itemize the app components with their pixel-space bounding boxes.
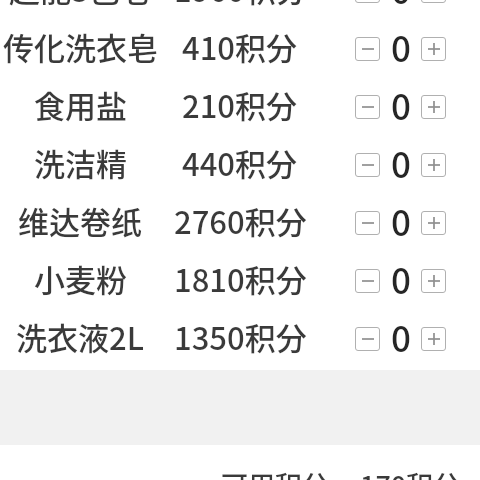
staticText: 洗洁精 bbox=[34, 140, 127, 185]
staticText: 440积分 bbox=[182, 140, 298, 185]
staticText: 0 bbox=[391, 0, 411, 14]
button[interactable]: Decrease quantity bbox=[355, 327, 380, 351]
button[interactable]: 维达卷纸 bbox=[0, 191, 480, 249]
button[interactable]: Decrease quantity bbox=[355, 37, 380, 61]
staticText: 410积分 bbox=[182, 24, 298, 69]
staticText: 0 bbox=[391, 311, 411, 362]
button[interactable]: 洗衣液2L bbox=[0, 307, 480, 365]
button[interactable]: Increase quantity bbox=[421, 269, 446, 293]
button[interactable]: 传化洗衣皂 bbox=[0, 17, 480, 75]
staticText: 210积分 bbox=[182, 82, 298, 127]
button[interactable]: Decrease quantity bbox=[355, 95, 380, 119]
staticText: 食用盐 bbox=[34, 82, 127, 127]
button[interactable]: Increase quantity bbox=[421, 0, 446, 3]
staticText: 0 bbox=[391, 253, 411, 304]
staticText: 0 bbox=[391, 79, 411, 130]
button[interactable]: Decrease quantity bbox=[355, 0, 380, 3]
button[interactable]: 食用盐 bbox=[0, 75, 480, 133]
staticText: 传化洗衣皂 bbox=[3, 24, 158, 69]
staticText: 维达卷纸 bbox=[18, 198, 142, 243]
staticText: 1960积分 bbox=[174, 0, 307, 11]
button[interactable]: 小麦粉 bbox=[0, 249, 480, 307]
button[interactable]: Increase quantity bbox=[421, 37, 446, 61]
button[interactable]: Decrease quantity bbox=[355, 211, 380, 235]
button[interactable]: Increase quantity bbox=[421, 95, 446, 119]
staticText: 2760积分 bbox=[174, 198, 307, 243]
button[interactable]: Increase quantity bbox=[421, 153, 446, 177]
button[interactable]: 超能3色皂 bbox=[0, 0, 480, 17]
staticText: 1810积分 bbox=[174, 256, 307, 301]
staticText: 0 bbox=[391, 137, 411, 188]
button[interactable]: Decrease quantity bbox=[355, 153, 380, 177]
button[interactable]: 洗洁精 bbox=[0, 133, 480, 191]
button[interactable]: Decrease quantity bbox=[355, 269, 380, 293]
staticText: 1350积分 bbox=[174, 314, 307, 359]
staticText: 超能3色皂 bbox=[9, 0, 151, 11]
staticText: 小麦粉 bbox=[34, 256, 127, 301]
staticText: 可用积分 bbox=[221, 465, 329, 480]
button[interactable]: Increase quantity bbox=[421, 327, 446, 351]
staticText: 0 bbox=[391, 21, 411, 72]
staticText: 洗衣液2L bbox=[16, 314, 144, 359]
button[interactable]: Increase quantity bbox=[421, 211, 446, 235]
staticText: 170积分 bbox=[360, 465, 461, 480]
staticText: 0 bbox=[391, 195, 411, 246]
